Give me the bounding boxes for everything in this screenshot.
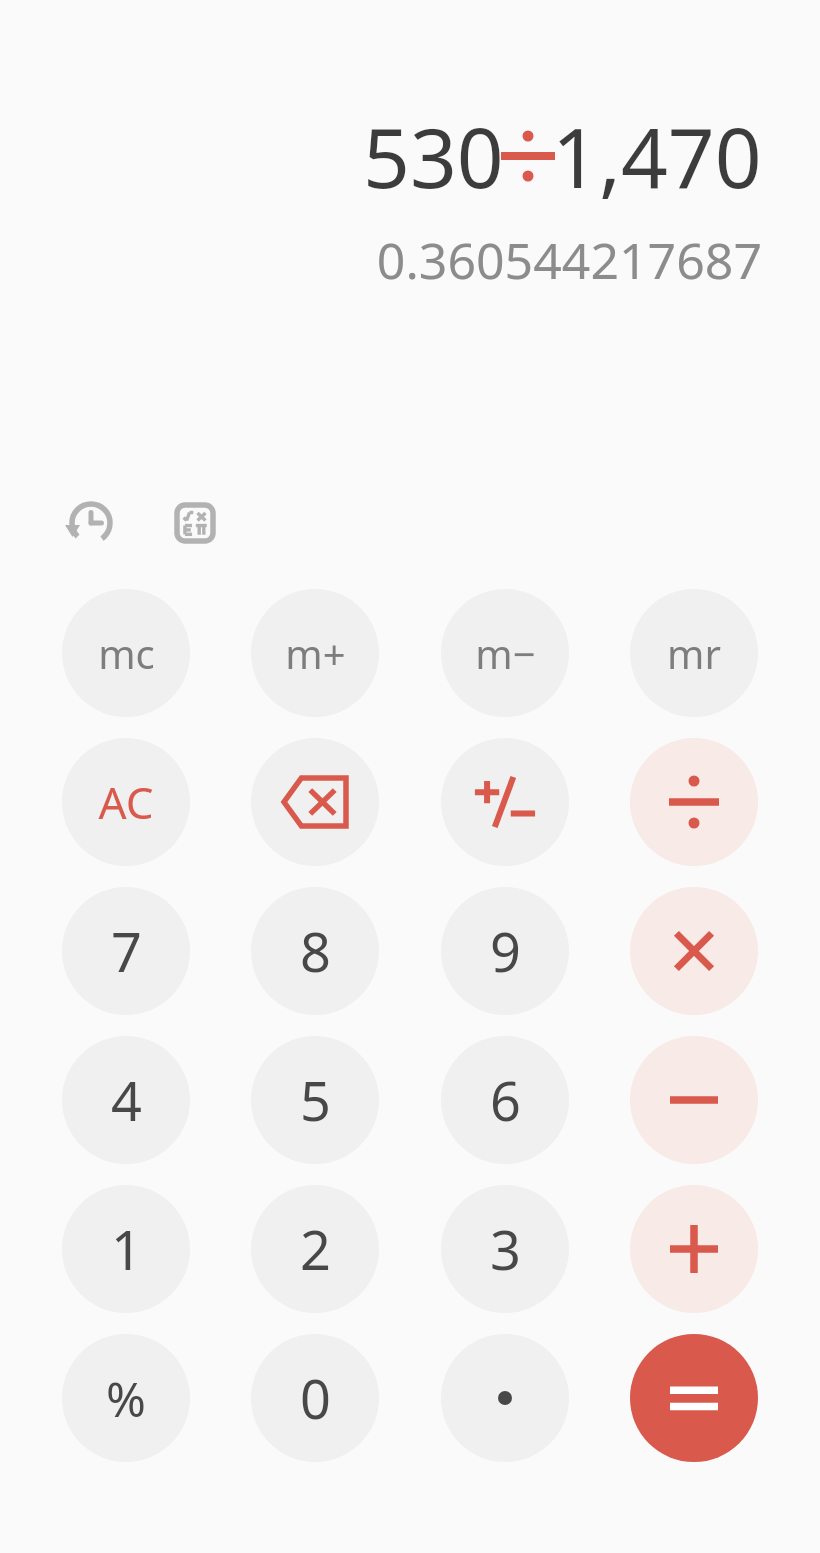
button[interactable]: 5 bbox=[251, 1036, 379, 1164]
staticText: 7 bbox=[111, 914, 142, 988]
button[interactable]: mr bbox=[630, 589, 758, 717]
staticText: 530 bbox=[363, 100, 504, 212]
button[interactable]: m+ bbox=[251, 589, 379, 717]
button[interactable]: Equals bbox=[630, 1334, 758, 1462]
staticText: mc bbox=[98, 626, 155, 680]
button[interactable]: mc bbox=[62, 589, 190, 717]
staticText: 9 bbox=[490, 914, 521, 988]
button[interactable]: 3 bbox=[441, 1185, 569, 1313]
button[interactable]: 8 bbox=[251, 887, 379, 1015]
button[interactable]: AC bbox=[62, 738, 190, 866]
button[interactable]: 9 bbox=[441, 887, 569, 1015]
staticText: 3 bbox=[490, 1212, 521, 1286]
staticText: 5 bbox=[300, 1063, 331, 1137]
button[interactable]: Plus bbox=[630, 1185, 758, 1313]
staticText: 0 bbox=[300, 1361, 331, 1435]
button[interactable]: Multiply bbox=[630, 887, 758, 1015]
button[interactable]: Backspace bbox=[251, 738, 379, 866]
button[interactable]: 6 bbox=[441, 1036, 569, 1164]
staticText: 6 bbox=[490, 1063, 521, 1137]
staticText: 1,470 bbox=[552, 100, 762, 212]
staticText: AC bbox=[98, 772, 154, 832]
staticText: 8 bbox=[300, 914, 331, 988]
button[interactable]: Plus minus bbox=[441, 738, 569, 866]
staticText: 0.360544217687 bbox=[376, 226, 762, 294]
staticText: 4 bbox=[111, 1063, 142, 1137]
button[interactable]: 2 bbox=[251, 1185, 379, 1313]
button[interactable]: % bbox=[62, 1334, 190, 1462]
staticText: m− bbox=[475, 626, 536, 680]
button[interactable]: Decimal point bbox=[441, 1334, 569, 1462]
staticText: % bbox=[106, 1366, 146, 1431]
staticText: 2 bbox=[300, 1212, 331, 1286]
button[interactable]: m− bbox=[441, 589, 569, 717]
button[interactable]: Divide bbox=[630, 738, 758, 866]
button[interactable]: 1 bbox=[62, 1185, 190, 1313]
button[interactable]: History bbox=[62, 494, 120, 552]
button[interactable]: 0 bbox=[251, 1334, 379, 1462]
button[interactable]: Scientific calculator bbox=[166, 494, 224, 552]
button[interactable]: Minus bbox=[630, 1036, 758, 1164]
button[interactable]: 7 bbox=[62, 887, 190, 1015]
button[interactable]: 4 bbox=[62, 1036, 190, 1164]
staticText: mr bbox=[667, 626, 721, 680]
staticText: 1 bbox=[111, 1212, 142, 1286]
staticText: m+ bbox=[285, 626, 346, 680]
